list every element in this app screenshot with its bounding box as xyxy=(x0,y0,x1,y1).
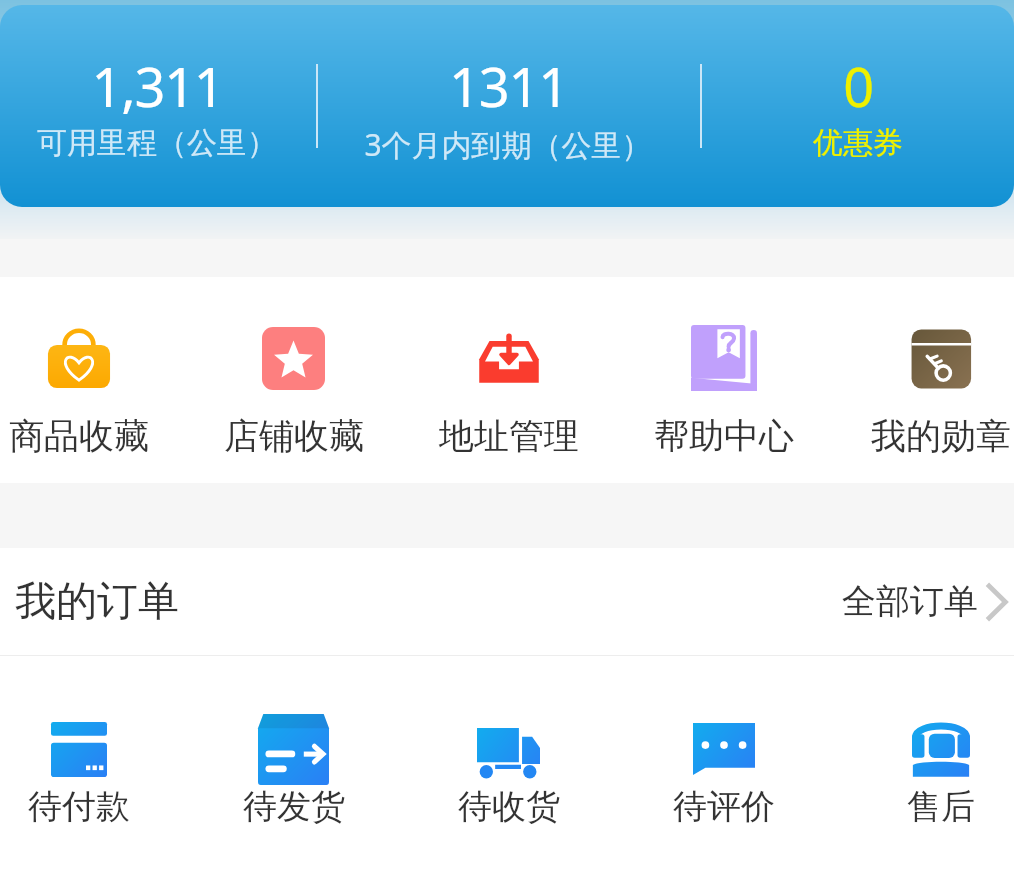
staticText: 帮助中心 xyxy=(654,414,794,458)
staticText: 1,311 xyxy=(91,49,224,123)
button[interactable]: 我的勋章 xyxy=(833,322,1014,458)
staticText: 地址管理 xyxy=(439,414,579,458)
staticText: 优惠券 xyxy=(813,124,903,162)
staticText: 售后 xyxy=(907,785,975,828)
button[interactable]: 待评价 xyxy=(616,713,831,828)
staticText: 我的勋章 xyxy=(871,414,1011,458)
staticText: 待收货 xyxy=(458,785,560,828)
button[interactable]: 待收货 xyxy=(401,713,616,828)
staticText: 我的订单 xyxy=(15,576,179,628)
staticText: 可用里程（公里） xyxy=(37,124,277,162)
button[interactable]: 待发货 xyxy=(186,713,401,828)
button[interactable]: 1311 xyxy=(318,5,698,207)
button[interactable]: 帮助中心 xyxy=(616,322,831,458)
staticText: 1311 xyxy=(449,49,568,123)
button[interactable]: 1,311 xyxy=(0,5,347,207)
staticText: 店铺收藏 xyxy=(224,414,364,458)
staticText: 3个月内到期（公里） xyxy=(364,124,652,165)
staticText: 全部订单 xyxy=(842,580,978,623)
button[interactable]: 售后 xyxy=(833,713,1014,828)
button[interactable]: 待付款 xyxy=(0,713,186,828)
button[interactable]: 我的订单 xyxy=(0,548,1014,655)
staticText: 待评价 xyxy=(673,785,775,828)
button[interactable]: 商品收藏 xyxy=(0,322,186,458)
staticText: 0 xyxy=(843,49,873,123)
button[interactable]: 地址管理 xyxy=(401,322,616,458)
staticText: 待付款 xyxy=(28,785,130,828)
staticText: 待发货 xyxy=(243,785,345,828)
staticText: 商品收藏 xyxy=(9,414,149,458)
button[interactable]: 店铺收藏 xyxy=(186,322,401,458)
button[interactable]: 0 xyxy=(668,5,1014,207)
